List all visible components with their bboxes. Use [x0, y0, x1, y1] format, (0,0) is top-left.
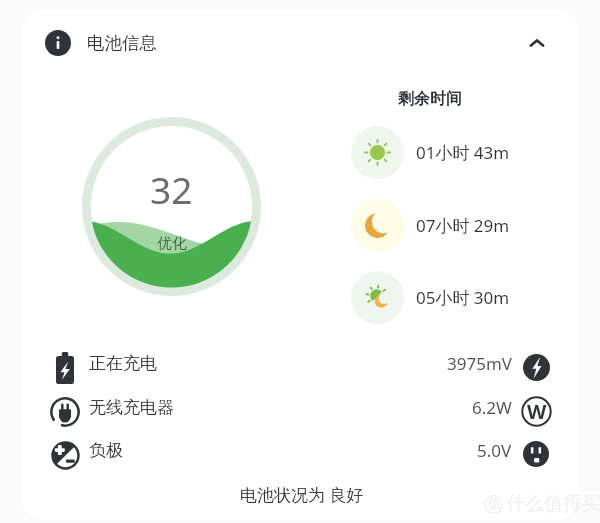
staticText: 3975mV	[447, 352, 512, 375]
button[interactable]: 电池信息	[21, 10, 578, 76]
staticText: 6.2W	[472, 396, 512, 419]
staticText: W	[527, 398, 547, 425]
staticText: 01小时 43m	[416, 141, 510, 164]
button[interactable]: Collapse battery info	[516, 22, 558, 64]
button[interactable]: 01小时 43m	[351, 126, 510, 179]
staticText: 剩余时间	[398, 89, 462, 109]
staticText: 07小时 29m	[416, 214, 510, 237]
staticText: 电池信息	[87, 32, 157, 54]
staticText: 优化	[157, 234, 187, 253]
staticText: 正在充电	[89, 353, 157, 374]
staticText: 无线充电器	[89, 397, 174, 418]
staticText: 5.0V	[477, 439, 512, 462]
staticText: 电池状况为 良好	[240, 483, 364, 506]
button[interactable]: 无线充电器	[21, 390, 578, 433]
staticText: 什么值得买	[506, 492, 600, 516]
staticText: 32	[150, 164, 193, 214]
staticText: 负极	[89, 440, 123, 461]
button[interactable]: 07小时 29m	[351, 199, 510, 252]
button[interactable]: 正在充电	[21, 346, 578, 389]
staticText: 05小时 30m	[416, 286, 510, 309]
button[interactable]: 负极	[21, 433, 578, 476]
staticText: 值	[488, 495, 502, 513]
button[interactable]: 05小时 30m	[351, 271, 510, 324]
